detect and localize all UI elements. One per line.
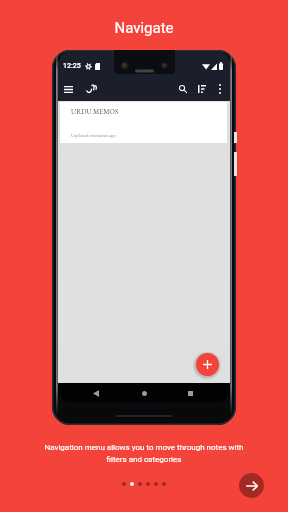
button[interactable]: Add note <box>196 353 219 376</box>
button[interactable]: Page 6 <box>162 482 166 486</box>
button[interactable]: Search <box>176 82 189 95</box>
staticText: Navigate <box>0 19 288 37</box>
staticText: Navigation menu allows you to move throu… <box>0 443 288 464</box>
staticText: Updated: moments ago <box>71 132 116 139</box>
button[interactable]: More options <box>213 82 226 95</box>
button[interactable]: URDU MEMOS <box>60 102 227 143</box>
button[interactable]: Sort <box>195 82 208 95</box>
button[interactable]: Next <box>239 473 264 498</box>
button[interactable]: Page 4 <box>146 482 150 486</box>
staticText: URDU MEMOS <box>71 107 119 116</box>
button[interactable]: Open navigation menu <box>61 82 75 96</box>
button[interactable]: Recent apps <box>182 385 198 401</box>
button[interactable]: Page 1 <box>122 482 126 486</box>
button[interactable]: Page 3 <box>138 482 142 486</box>
staticText: 12:25 <box>63 62 81 70</box>
button[interactable]: Page 2 <box>130 482 134 486</box>
button[interactable]: Back <box>88 385 104 401</box>
button[interactable]: Home <box>136 385 152 401</box>
button[interactable]: Page 5 <box>154 482 158 486</box>
